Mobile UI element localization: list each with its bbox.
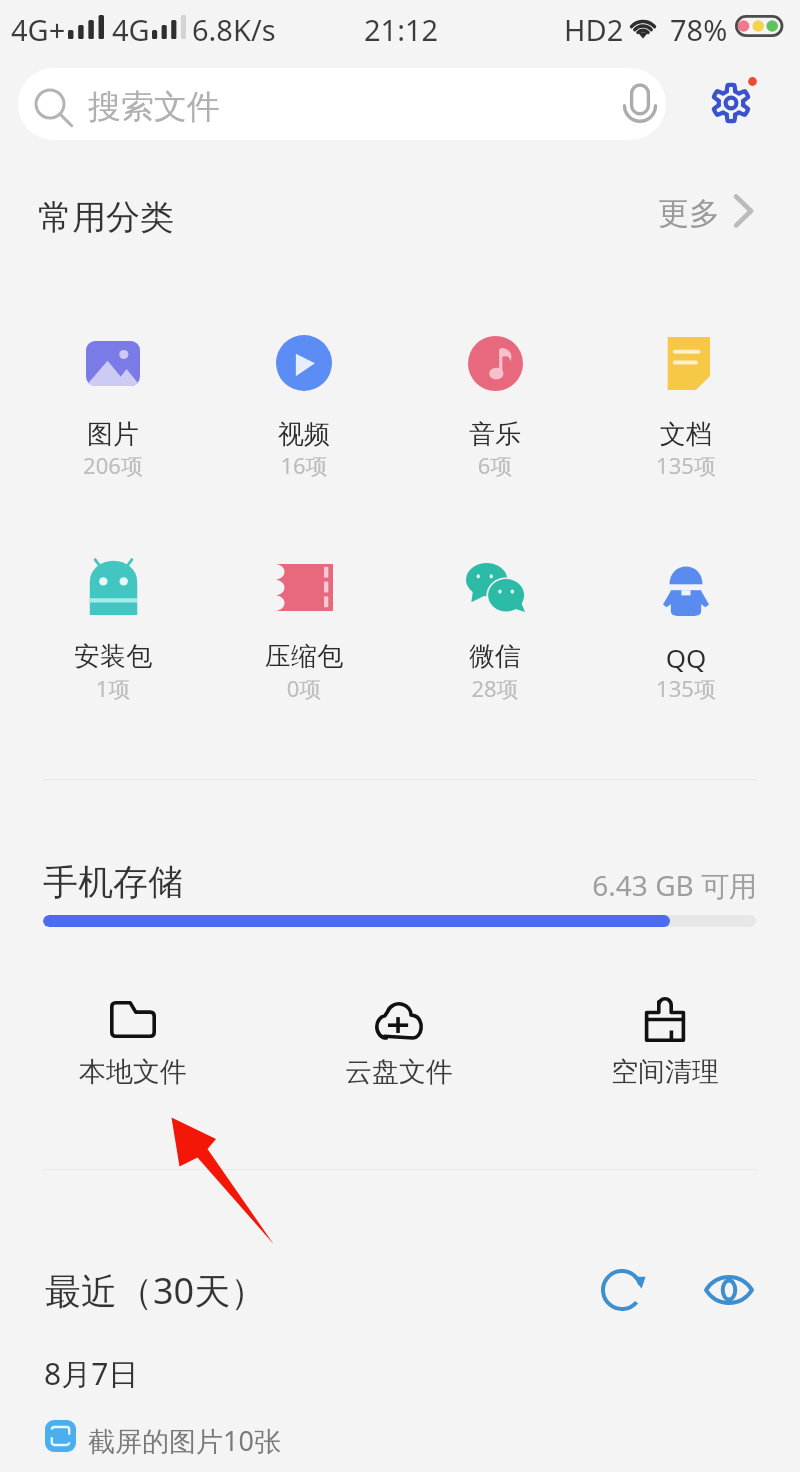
button[interactable] — [591, 542, 781, 672]
staticText: 截屏的图片10张 — [88, 1422, 281, 1459]
staticText: 音乐 — [400, 418, 590, 451]
button[interactable] — [400, 318, 590, 448]
staticText: 135项 — [591, 450, 781, 480]
button[interactable]: 搜索文件 — [18, 68, 666, 140]
staticText: 微信 — [400, 640, 590, 673]
staticText: 16项 — [209, 450, 399, 480]
staticText: 常用分类 — [38, 196, 174, 239]
button[interactable] — [400, 542, 590, 672]
button[interactable] — [209, 542, 399, 672]
staticText: 更多 — [658, 194, 720, 233]
staticText: 安装包 — [18, 640, 208, 673]
button[interactable] — [565, 988, 765, 1090]
button[interactable] — [591, 318, 781, 448]
staticText: 搜索文件 — [88, 86, 220, 128]
staticText: 6项 — [400, 450, 590, 480]
button[interactable] — [299, 988, 499, 1090]
staticText: 78% — [670, 10, 728, 49]
staticText: 文档 — [591, 418, 781, 451]
staticText: 21:12 — [364, 10, 439, 49]
button[interactable] — [18, 318, 208, 448]
staticText: 8月7日 — [44, 1353, 139, 1394]
staticText: 28项 — [400, 673, 590, 703]
staticText: 0项 — [209, 673, 399, 703]
button[interactable] — [209, 318, 399, 448]
button[interactable]: 截屏的图片10张 — [40, 1414, 370, 1458]
staticText: 空间清理 — [565, 1055, 765, 1089]
button[interactable]: Toggle preview — [703, 1264, 755, 1316]
button[interactable] — [18, 542, 208, 672]
button[interactable]: 更多 — [648, 186, 764, 242]
staticText: 4G+ — [11, 10, 66, 49]
staticText: 6.8K/s — [192, 10, 276, 49]
button[interactable]: Refresh — [596, 1264, 648, 1316]
staticText: 压缩包 — [209, 640, 399, 673]
staticText: 135项 — [591, 673, 781, 703]
staticText: 6.43 GB 可用 — [400, 866, 757, 904]
staticText: 本地文件 — [33, 1055, 233, 1089]
staticText: 图片 — [18, 418, 208, 451]
staticText: 视频 — [209, 418, 399, 451]
button[interactable] — [33, 988, 233, 1090]
staticText: 最近（30天） — [45, 1266, 267, 1315]
staticText: 云盘文件 — [299, 1055, 499, 1089]
staticText: 4G — [112, 10, 150, 49]
button[interactable]: Settings — [703, 75, 759, 131]
staticText: QQ — [591, 640, 781, 675]
staticText: HD2 — [564, 10, 624, 49]
staticText: 206项 — [18, 450, 208, 480]
staticText: 手机存储 — [43, 860, 183, 904]
staticText: 1项 — [18, 673, 208, 703]
